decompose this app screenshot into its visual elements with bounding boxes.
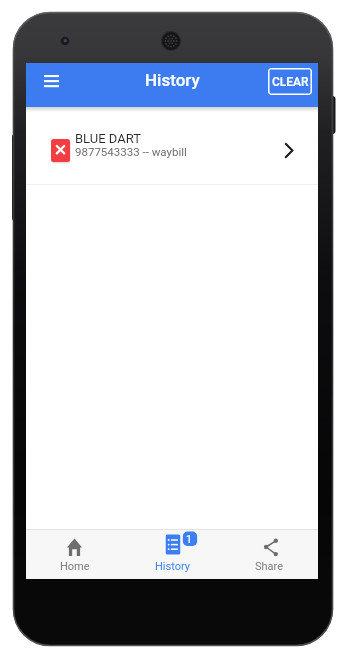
staticText: Home <box>60 560 90 573</box>
button[interactable] <box>34 64 68 98</box>
staticText: History <box>155 560 190 573</box>
staticText: History <box>145 70 200 90</box>
staticText: 9877543333 -- waybill <box>75 145 187 158</box>
staticText: BLUE DART <box>75 131 141 146</box>
staticText: 1 <box>186 533 192 545</box>
button[interactable]: Home <box>26 530 124 579</box>
button[interactable]: 1 <box>124 530 221 579</box>
staticText: Share <box>255 560 284 573</box>
button[interactable]: Share <box>221 530 318 579</box>
button[interactable]: CLEAR <box>268 68 312 95</box>
button[interactable]: BLUE DART <box>26 107 318 185</box>
staticText: CLEAR <box>272 75 309 89</box>
